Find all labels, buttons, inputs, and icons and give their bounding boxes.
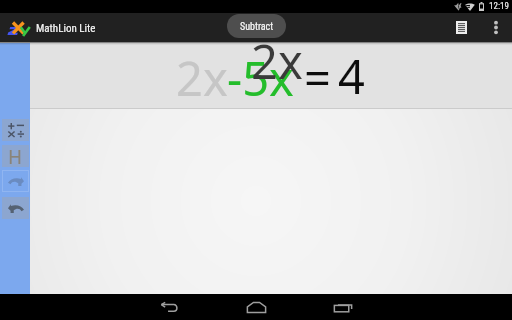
staticText: MathLion Lite: [36, 22, 96, 35]
button[interactable]: H: [2, 145, 29, 167]
staticText: =: [304, 45, 331, 109]
button[interactable]: Subtract: [227, 14, 286, 38]
button[interactable]: Recent apps: [327, 294, 359, 320]
button[interactable]: [2, 197, 29, 219]
button[interactable]: Solution steps: [450, 16, 473, 39]
button[interactable]: [2, 119, 29, 141]
staticText: 12:19: [489, 1, 509, 12]
staticText: 4: [338, 44, 365, 108]
button[interactable]: Home: [240, 294, 272, 320]
staticText: Subtract: [240, 21, 274, 33]
button[interactable]: More options: [484, 16, 507, 39]
staticText: H: [8, 144, 23, 166]
staticText: 2x: [176, 46, 228, 110]
staticText: -5x: [227, 46, 294, 110]
button[interactable]: [2, 170, 29, 192]
staticText: 2x: [251, 29, 303, 93]
button[interactable]: 2x: [30, 43, 512, 108]
button[interactable]: Back: [153, 294, 185, 320]
